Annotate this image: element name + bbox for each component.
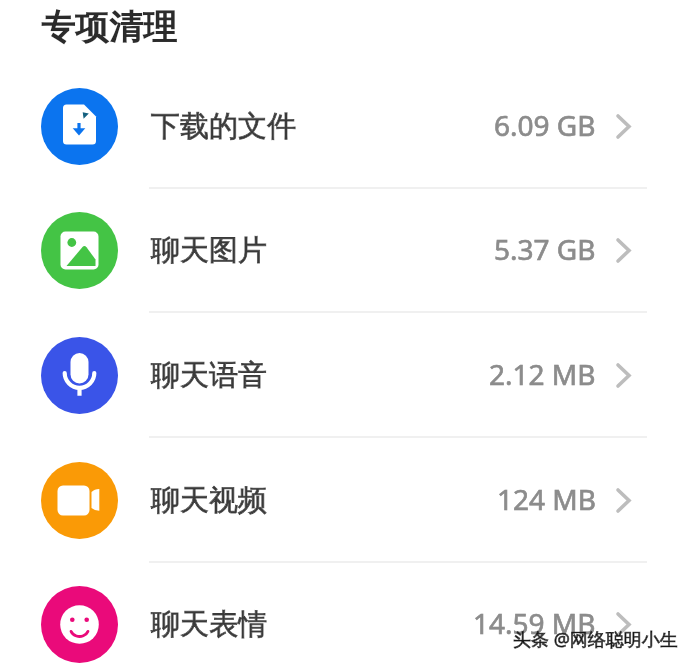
staticText: 2.12 MB	[489, 355, 596, 393]
button[interactable]: 聊天视频	[0, 438, 691, 563]
staticText: 下载的文件	[151, 108, 296, 145]
staticText: 聊天视频	[151, 482, 267, 519]
staticText: 聊天视频	[151, 482, 267, 519]
staticText: 5.37 GB	[494, 230, 596, 268]
staticText: 聊天语音	[151, 357, 267, 394]
staticText: 聊天表情	[151, 606, 267, 643]
staticText: 头条 @网络聪明小生	[513, 627, 678, 652]
staticText: 专项清理	[41, 6, 177, 49]
staticText: 下载的文件	[151, 108, 296, 145]
staticText: 头条 @网络聪明小生	[513, 627, 678, 652]
staticText: 14.59 MB	[473, 604, 596, 642]
staticText: 124 MB	[497, 480, 596, 518]
button[interactable]: 聊天表情	[0, 562, 691, 663]
staticText: 聊天图片	[151, 232, 267, 269]
button[interactable]: 聊天图片	[0, 188, 691, 313]
staticText: 6.09 GB	[494, 106, 596, 144]
staticText: 聊天语音	[151, 357, 267, 394]
staticText: 聊天表情	[151, 606, 267, 643]
staticText: 14.59 MB	[473, 604, 596, 642]
staticText: 6.09 GB	[494, 106, 596, 144]
button[interactable]: 聊天语音	[0, 313, 691, 438]
staticText: 聊天图片	[151, 232, 267, 269]
button[interactable]: 下载的文件	[0, 64, 691, 189]
staticText: 5.37 GB	[494, 230, 596, 268]
staticText: 124 MB	[497, 480, 596, 518]
staticText: 2.12 MB	[489, 355, 596, 393]
